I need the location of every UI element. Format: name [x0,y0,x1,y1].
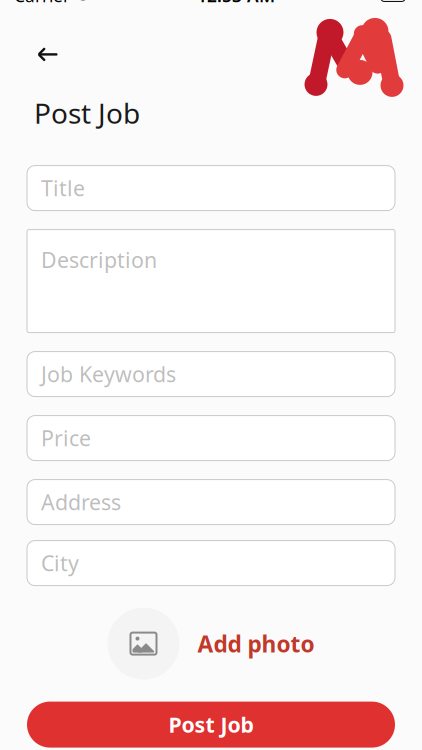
staticText: Title [41,174,85,202]
button[interactable]: Back [26,32,70,76]
staticText: Price [41,424,91,452]
staticText: Job Keywords [41,360,176,388]
button[interactable]: Add photo [197,628,314,659]
staticText: Post Job [34,94,140,132]
button[interactable]: Post Job [27,702,395,748]
staticText: Carrier [14,0,70,7]
button[interactable]: Job Keywords [27,352,395,397]
staticText: City [41,549,79,577]
button[interactable]: City [27,541,395,586]
button[interactable]: Address [27,480,395,525]
staticText: Description [41,246,157,274]
button[interactable]: Add photo [107,608,179,680]
staticText: Address [41,488,121,516]
button[interactable]: Price [27,416,395,461]
button[interactable]: Description [27,230,395,333]
staticText: 12:53 AM [197,0,275,7]
staticText: Post Job [168,710,253,739]
button[interactable]: Title [27,166,395,211]
staticText: Add photo [197,628,314,659]
